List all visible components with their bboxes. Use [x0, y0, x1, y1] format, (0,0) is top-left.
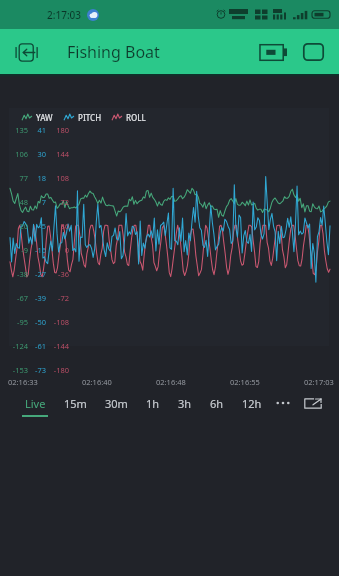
staticText: 02:16:40	[82, 377, 112, 387]
staticText: 41	[31, 125, 46, 135]
staticText: ROLL	[126, 112, 146, 123]
staticText: -153	[8, 365, 28, 375]
staticText: 20	[8, 221, 28, 231]
staticText: 12h	[242, 396, 262, 411]
staticText: 30	[31, 149, 46, 159]
staticText: 77	[8, 173, 28, 183]
staticText: Fishing Boat	[67, 41, 160, 63]
staticText: -108	[49, 317, 69, 327]
staticText: -9	[8, 245, 28, 255]
staticText: 15m	[64, 396, 87, 411]
staticText: YAW	[36, 112, 53, 123]
staticText: 180	[49, 125, 69, 135]
button[interactable]: 3h	[178, 399, 192, 414]
staticText: 144	[49, 149, 69, 159]
button[interactable]: 6h	[210, 399, 224, 414]
staticText: -38	[8, 269, 28, 279]
staticText: 18	[31, 173, 46, 183]
staticText: 36	[49, 221, 69, 231]
staticText: 02:16:55	[230, 377, 260, 387]
staticText: 2:17:03	[47, 8, 82, 22]
staticText: 72	[49, 197, 69, 207]
button[interactable]: 12h	[242, 399, 262, 414]
staticText: -72	[49, 293, 69, 303]
staticText: 02:17:03	[304, 377, 334, 387]
staticText: 1h	[146, 396, 160, 411]
staticText: -36	[49, 269, 69, 279]
staticText: -61	[31, 341, 46, 351]
staticText: -124	[8, 341, 28, 351]
button[interactable]: Back	[7, 32, 47, 72]
staticText: -16	[31, 245, 46, 255]
staticText: -95	[8, 317, 28, 327]
staticText: -5	[31, 221, 46, 231]
staticText: 135	[8, 125, 28, 135]
button[interactable]: 15m	[64, 399, 87, 414]
staticText: 108	[49, 173, 69, 183]
staticText: 3h	[178, 396, 192, 411]
staticText: -50	[31, 317, 46, 327]
staticText: -144	[49, 341, 69, 351]
button[interactable]: Live	[22, 396, 48, 417]
staticText: 02:16:48	[156, 377, 186, 387]
button[interactable]: Open in full screen	[301, 391, 325, 415]
staticText: -180	[49, 365, 69, 375]
staticText: 0	[49, 245, 69, 255]
button[interactable]: Display	[293, 32, 333, 72]
staticText: -73	[31, 365, 46, 375]
staticText: 6h	[210, 396, 224, 411]
staticText: 30m	[105, 396, 128, 411]
staticText: 106	[8, 149, 28, 159]
staticText: 48	[8, 197, 28, 207]
button[interactable]: Battery status	[253, 32, 293, 72]
staticText: 7	[31, 197, 46, 207]
staticText: Live	[25, 396, 46, 411]
button[interactable]: 1h	[146, 399, 160, 414]
staticText: PITCH	[78, 112, 102, 123]
button[interactable]: More options	[271, 391, 295, 415]
staticText: -39	[31, 293, 46, 303]
staticText: -67	[8, 293, 28, 303]
button[interactable]: 30m	[105, 399, 128, 414]
staticText: 02:16:33	[8, 377, 38, 387]
staticText: -27	[31, 269, 46, 279]
